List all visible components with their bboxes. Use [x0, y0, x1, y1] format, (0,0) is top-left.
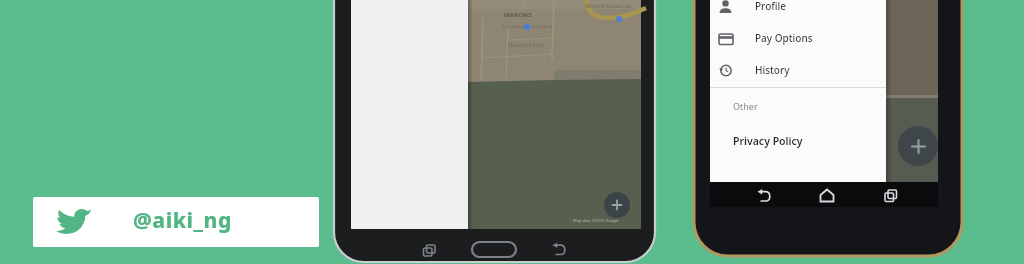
button[interactable]: [414, 238, 654, 264]
button[interactable]: Pay Options: [710, 22, 886, 54]
button[interactable]: [898, 126, 938, 166]
staticText: Westfield Subsea Line: [585, 3, 632, 9]
staticText: @aiki_ng: [133, 206, 232, 235]
staticText: Prince Adema Doro Road: [502, 24, 553, 29]
button[interactable]: History: [710, 54, 886, 86]
button[interactable]: Profile: [710, 0, 886, 22]
staticText: Molangord Road: [508, 42, 544, 48]
staticText: Other: [733, 100, 758, 112]
staticText: MAROKO: [504, 11, 533, 19]
staticText: Pay Options: [755, 31, 813, 45]
button[interactable]: @aiki_ng: [33, 197, 319, 247]
staticText: Profile: [755, 0, 786, 13]
button[interactable]: [710, 182, 938, 207]
staticText: History: [755, 63, 790, 77]
button[interactable]: Privacy Policy: [733, 134, 803, 148]
staticText: Map data ©2015 Google: [573, 218, 619, 223]
